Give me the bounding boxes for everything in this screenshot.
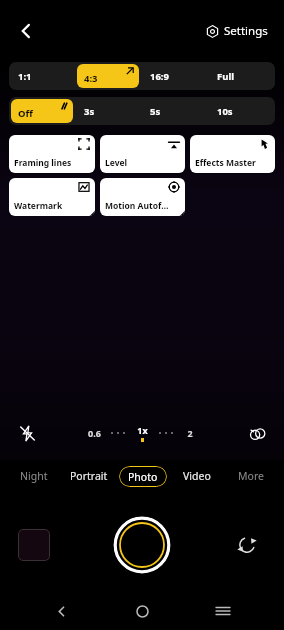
button[interactable]: More bbox=[224, 455, 278, 497]
staticText: Portrait bbox=[70, 469, 108, 483]
button[interactable]: 16:9 bbox=[141, 62, 208, 90]
button[interactable]: Portrait bbox=[61, 455, 116, 497]
button[interactable]: 3s bbox=[75, 97, 141, 125]
staticText: 5s bbox=[150, 105, 161, 118]
staticText: 0.6 bbox=[88, 427, 101, 439]
button[interactable]: Night bbox=[6, 455, 61, 497]
button[interactable]: Gallery bbox=[18, 529, 50, 561]
button[interactable]: 1:1 bbox=[9, 62, 75, 90]
button[interactable]: Back bbox=[41, 592, 81, 630]
button[interactable]: Watermark bbox=[9, 178, 95, 216]
staticText: 1x bbox=[137, 424, 148, 436]
staticText: 16:9 bbox=[150, 70, 169, 83]
staticText: Photo bbox=[128, 470, 158, 484]
button[interactable]: 0.6 bbox=[81, 420, 107, 446]
staticText: 10s bbox=[217, 105, 233, 118]
button[interactable]: 2 bbox=[177, 420, 203, 446]
staticText: Night bbox=[20, 469, 48, 483]
button[interactable]: Video bbox=[170, 455, 224, 497]
button[interactable]: Home bbox=[122, 592, 162, 630]
button[interactable]: Photo bbox=[116, 455, 170, 497]
button[interactable]: Framing lines bbox=[9, 135, 95, 173]
staticText: 4:3 bbox=[84, 72, 98, 85]
button[interactable]: Filters bbox=[242, 418, 272, 448]
button[interactable]: Recents bbox=[203, 592, 243, 630]
staticText: 3s bbox=[84, 105, 95, 118]
staticText: 1:1 bbox=[18, 70, 32, 83]
button[interactable]: Motion Autof… bbox=[100, 178, 185, 216]
button[interactable]: Off bbox=[11, 99, 73, 123]
button[interactable]: 4:3 bbox=[77, 64, 139, 88]
staticText: Framing lines bbox=[14, 157, 72, 169]
button[interactable]: Shutter bbox=[113, 516, 171, 574]
button[interactable]: Settings bbox=[202, 19, 272, 43]
staticText: More bbox=[238, 469, 264, 483]
button[interactable]: Full bbox=[208, 62, 275, 90]
button[interactable]: 5s bbox=[141, 97, 208, 125]
staticText: Full bbox=[217, 70, 235, 83]
button[interactable]: Back bbox=[8, 13, 44, 49]
button[interactable]: Switch camera bbox=[230, 528, 264, 562]
staticText: Video bbox=[183, 469, 211, 483]
button[interactable]: Effects Master bbox=[190, 135, 275, 173]
button[interactable]: 10s bbox=[208, 97, 275, 125]
staticText: Effects Master bbox=[195, 157, 256, 169]
staticText: Motion Autof… bbox=[105, 200, 169, 212]
staticText: Off bbox=[18, 107, 33, 120]
staticText: 2 bbox=[187, 427, 193, 439]
staticText: Watermark bbox=[14, 200, 63, 212]
staticText: Settings bbox=[224, 23, 268, 39]
button[interactable]: 1x bbox=[129, 420, 155, 446]
button[interactable]: Flash off bbox=[12, 418, 42, 448]
staticText: Level bbox=[105, 157, 128, 169]
button[interactable]: Level bbox=[100, 135, 185, 173]
